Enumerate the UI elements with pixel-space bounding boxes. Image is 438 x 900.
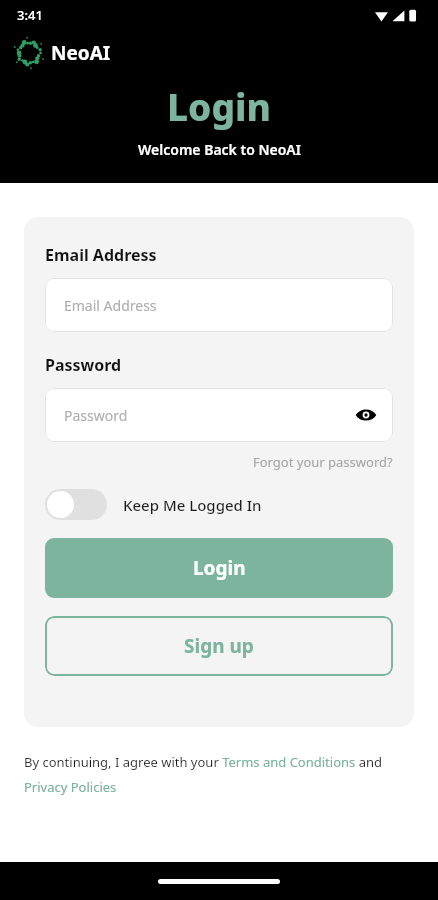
button[interactable]: Keep Me Logged In <box>45 489 262 520</box>
button[interactable]: Password <box>45 388 393 442</box>
staticText: 3:41 <box>17 6 43 24</box>
staticText: Password <box>64 406 128 425</box>
staticText: Email Address <box>64 296 157 315</box>
staticText: Login <box>167 81 271 131</box>
staticText: By continuing, I agree with your Terms a… <box>24 753 418 795</box>
button[interactable]: Show password <box>349 398 383 432</box>
staticText: Forgot your password? <box>253 453 393 471</box>
button[interactable]: Sign up <box>45 616 393 676</box>
staticText: Login <box>193 555 246 581</box>
button[interactable]: Login <box>45 538 393 598</box>
button[interactable]: Email Address <box>45 278 393 332</box>
staticText: Email Address <box>45 244 157 266</box>
staticText: Keep Me Logged In <box>123 495 262 515</box>
staticText: Sign up <box>184 633 254 659</box>
button[interactable]: Forgot your password? <box>45 453 393 471</box>
staticText: NeoAI <box>51 40 111 66</box>
staticText: Welcome Back to NeoAI <box>138 140 301 159</box>
staticText: Password <box>45 354 122 376</box>
button[interactable]: By continuing, I agree with your Terms a… <box>24 753 418 795</box>
